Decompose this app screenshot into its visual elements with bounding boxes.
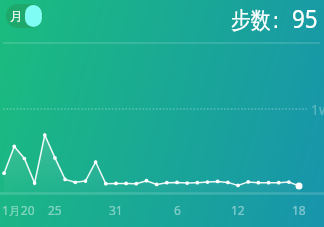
staticText: 月 <box>10 8 23 24</box>
staticText: 6 <box>174 202 181 218</box>
staticText: 步数 <box>231 6 271 35</box>
staticText: 18 <box>292 202 306 218</box>
staticText: 1月20 <box>2 202 35 218</box>
staticText: 1w <box>311 100 324 119</box>
staticText: 31 <box>109 202 123 218</box>
staticText: 95 <box>292 0 318 35</box>
staticText: 25 <box>48 202 62 218</box>
button[interactable]: Switch period <box>6 4 43 28</box>
staticText: 12 <box>231 202 245 218</box>
staticText: ： <box>266 6 286 35</box>
